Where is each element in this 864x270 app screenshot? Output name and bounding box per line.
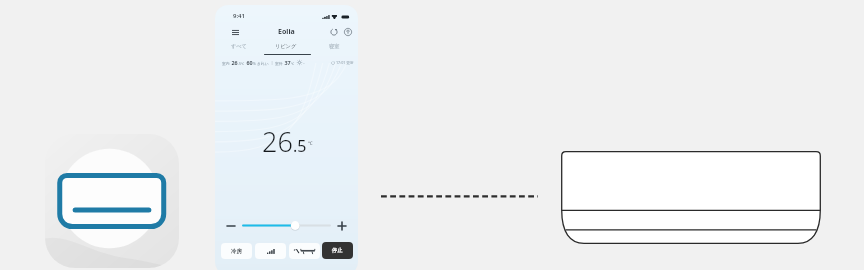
staticText: 26 [262, 123, 293, 160]
staticText: 60 [245, 59, 253, 66]
staticText: ℃ [241, 62, 245, 66]
button[interactable]: Airflow direction [289, 243, 320, 259]
staticText: 室内 [222, 61, 230, 66]
staticText: .5 [293, 135, 307, 157]
staticText: ℃ [308, 140, 313, 146]
button[interactable]: 寝室 [310, 40, 358, 56]
staticText: 冷房 [231, 248, 242, 255]
staticText: ℃ [291, 62, 295, 66]
staticText: 26 [230, 59, 238, 66]
staticText: すべて [231, 43, 247, 50]
staticText: Eolia [278, 27, 295, 37]
staticText: .5 [238, 61, 241, 66]
staticText: 9:41 [233, 12, 245, 20]
staticText: リビング [275, 43, 297, 50]
button[interactable]: Refresh [328, 26, 340, 38]
staticText: 室外 [274, 61, 283, 66]
button[interactable]: Menu [228, 27, 242, 38]
staticText: 17:01 更新 [335, 60, 354, 65]
staticText: | [269, 60, 274, 65]
button[interactable]: Fan speed [255, 243, 286, 259]
button[interactable]: Help [342, 26, 354, 38]
button[interactable]: 冷房 mode [221, 243, 252, 259]
staticText: ･ [302, 61, 305, 66]
staticText: 37 [283, 59, 291, 66]
button[interactable]: リビング [262, 40, 310, 56]
button[interactable]: Decrease temperature [223, 218, 239, 234]
staticText: きれい [256, 61, 269, 66]
button[interactable]: 停止 stop [322, 242, 353, 259]
button[interactable]: Increase temperature [334, 218, 350, 234]
staticText: % [253, 61, 256, 66]
staticText: 停止 [332, 247, 343, 254]
staticText: 寝室 [329, 43, 340, 50]
button[interactable]: すべて [215, 40, 262, 56]
